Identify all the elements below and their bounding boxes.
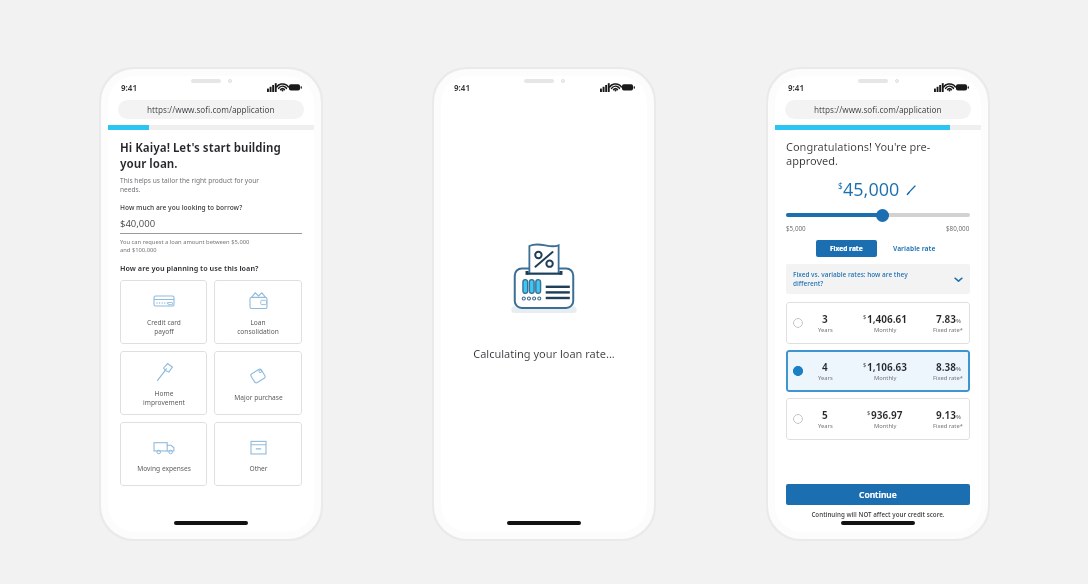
staticText: 9:41 [788, 82, 804, 93]
staticText: Loan consolidation [237, 318, 279, 336]
staticText: $ [863, 313, 867, 321]
staticText: Continue [859, 489, 897, 501]
staticText: Moving expenses [137, 464, 191, 473]
staticText: Home improvement [143, 389, 185, 407]
staticText: 936.97 [871, 408, 903, 422]
staticText: 3 [822, 312, 828, 326]
button[interactable]: Variable rate [889, 240, 940, 257]
staticText: 9:41 [121, 82, 137, 93]
staticText: $80,000 [946, 224, 970, 233]
staticText: Years [818, 374, 833, 382]
staticText: Monthly [874, 422, 897, 430]
staticText: 8.38 [936, 360, 956, 374]
staticText: Hi Kaiya! Let's start building your loan… [120, 140, 281, 171]
staticText: 4 [822, 360, 828, 374]
staticText: $ [838, 180, 843, 191]
staticText: 9:41 [454, 82, 470, 93]
button[interactable]: https://www.sofi.com/application [785, 100, 971, 119]
button[interactable]: Loan amount slider [876, 209, 889, 222]
staticText: 9.13 [936, 408, 956, 422]
button[interactable]: Home improvement [120, 351, 207, 415]
staticText: Fixed rate* [933, 374, 963, 382]
button[interactable]: Fixed rate [816, 240, 877, 257]
staticText: % [956, 317, 961, 325]
staticText: 1,106.63 [867, 360, 907, 374]
button[interactable]: Edit amount [905, 183, 918, 196]
button[interactable]: Major purchase [214, 351, 302, 415]
button[interactable]: Fixed vs. variable rates: how are they d… [786, 264, 970, 294]
button[interactable]: Moving expenses [120, 422, 207, 486]
staticText: 1,406.61 [867, 312, 907, 326]
staticText: 7.83 [936, 312, 956, 326]
staticText: Fixed rate* [933, 422, 963, 430]
staticText: You can request a loan amount between $5… [120, 238, 250, 254]
button[interactable]: https://www.sofi.com/application [118, 100, 304, 119]
staticText: Major purchase [234, 393, 283, 402]
staticText: How are you planning to use this loan? [120, 263, 259, 273]
button[interactable]: Loan consolidation [214, 280, 302, 344]
staticText: Fixed rate [830, 244, 863, 253]
button[interactable]: Credit card payoff [120, 280, 207, 344]
staticText: Congratulations! You're pre- approved. [786, 139, 931, 169]
button[interactable]: 5 [786, 398, 970, 440]
staticText: % [956, 365, 961, 373]
staticText: Fixed vs. variable rates: how are they d… [793, 270, 954, 288]
staticText: Fixed rate* [933, 326, 963, 334]
staticText: https://www.sofi.com/application [814, 104, 942, 115]
staticText: $ [863, 361, 867, 369]
staticText: Variable rate [893, 244, 936, 253]
staticText: How much are you looking to borrow? [120, 203, 243, 212]
staticText: Continuing will NOT affect your credit s… [786, 510, 970, 518]
staticText: Years [818, 326, 833, 334]
staticText: $ [867, 409, 871, 417]
staticText: Credit card payoff [147, 318, 181, 336]
button[interactable]: 3 [786, 302, 970, 344]
staticText: $40,000 [120, 217, 156, 230]
staticText: Monthly [874, 326, 897, 334]
staticText: Calculating your loan rate... [441, 346, 647, 361]
staticText: Years [818, 422, 833, 430]
staticText: Monthly [874, 374, 897, 382]
staticText: https://www.sofi.com/application [147, 104, 275, 115]
staticText: This helps us tailor the right product f… [120, 176, 260, 194]
button[interactable]: Other [214, 422, 302, 486]
button[interactable]: 4 [786, 350, 970, 392]
staticText: Other [249, 464, 268, 473]
staticText: 5 [822, 408, 828, 422]
button[interactable]: Continue [786, 484, 970, 505]
staticText: 45,000 [843, 177, 900, 202]
staticText: % [956, 413, 961, 421]
staticText: $5,000 [786, 224, 806, 233]
